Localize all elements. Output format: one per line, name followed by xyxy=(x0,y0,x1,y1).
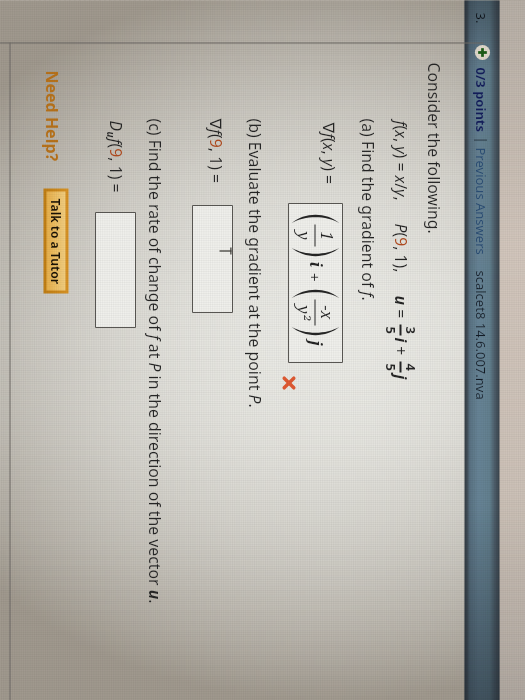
staticText: j xyxy=(304,340,326,346)
staticText: Need Help? xyxy=(40,70,62,161)
staticText: ∇f(x, y) = xyxy=(317,122,339,184)
staticText: u xyxy=(103,131,117,138)
staticText: y² xyxy=(292,305,314,320)
staticText: y xyxy=(292,231,314,240)
staticText: j xyxy=(389,374,411,379)
button[interactable]: Talk to a Tutor xyxy=(46,191,65,290)
button[interactable] xyxy=(95,212,135,327)
staticText: f(x, y) = x/y, xyxy=(389,120,411,201)
staticText: i + xyxy=(389,337,411,359)
staticText: (b) Evaluate the gradient at the point P… xyxy=(243,118,265,408)
staticText: scalcet8 14.6.007.nva xyxy=(471,270,489,400)
staticText: −x xyxy=(315,305,337,319)
staticText: ∇f(9, 1) = xyxy=(204,118,226,183)
staticText: u = xyxy=(389,295,411,322)
staticText: (c) Find the rate of change of f at P in… xyxy=(143,118,165,603)
staticText: 5 xyxy=(381,326,399,334)
staticText: Consider the following. xyxy=(422,62,444,234)
staticText: + xyxy=(303,272,326,282)
staticText: (a) Find the gradient of f. xyxy=(356,118,378,301)
staticText: D xyxy=(104,120,126,131)
button[interactable]: 1 xyxy=(288,203,342,362)
staticText: P(9, 1), xyxy=(389,223,411,273)
staticText: 1 xyxy=(315,231,337,240)
staticText: i xyxy=(304,261,326,267)
staticText: | xyxy=(472,136,490,144)
staticText: 3 xyxy=(401,326,419,334)
staticText: 3. xyxy=(471,12,489,23)
button[interactable]: 0/3 points xyxy=(471,67,489,132)
staticText: 4 xyxy=(401,363,419,371)
staticText: Talk to a Tutor xyxy=(47,198,63,284)
button[interactable]: Previous Answers xyxy=(471,147,489,255)
staticText: 5 xyxy=(381,363,399,371)
button[interactable]: Correct xyxy=(474,44,490,60)
button[interactable] xyxy=(192,205,232,312)
staticText: f(9, 1) = xyxy=(104,138,126,193)
